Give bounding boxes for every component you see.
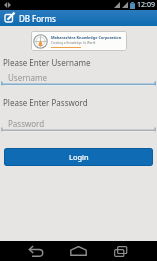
button[interactable]: Login xyxy=(4,148,153,166)
button[interactable] xyxy=(58,241,98,261)
button[interactable]: Username xyxy=(1,68,156,86)
staticText: Password xyxy=(8,118,45,129)
button[interactable] xyxy=(100,241,140,261)
staticText: 12:09 xyxy=(137,0,155,10)
staticText: DB Forms xyxy=(19,13,56,24)
button[interactable] xyxy=(16,241,56,261)
staticText: Maharashtra Knowledge Corporation Ltd. xyxy=(51,35,127,40)
staticText: Creating a Knowledge Lit World xyxy=(51,41,96,45)
staticText: Username xyxy=(8,72,47,83)
button[interactable]: Password xyxy=(1,114,156,132)
staticText: Login xyxy=(69,152,89,162)
staticText: Please Enter Password xyxy=(3,97,88,108)
staticText: Please Enter Username xyxy=(3,57,91,68)
